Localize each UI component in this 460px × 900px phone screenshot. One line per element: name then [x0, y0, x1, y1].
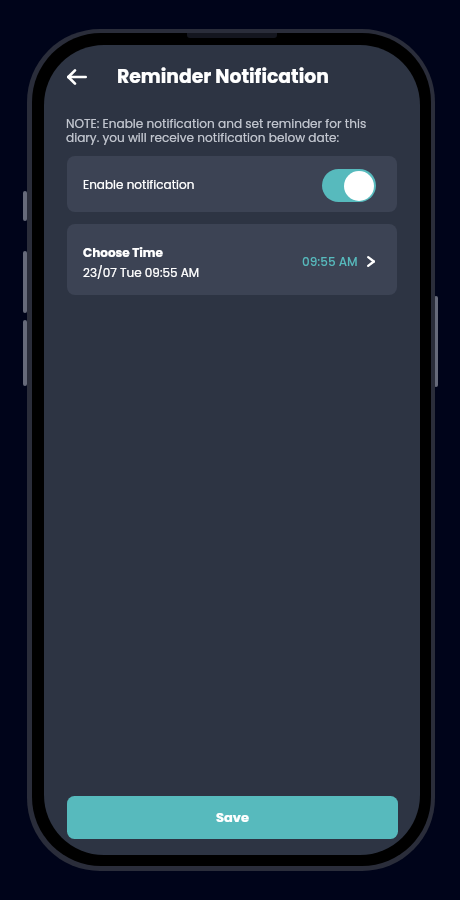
staticText: NOTE: Enable notification and set remind… [66, 115, 376, 147]
button[interactable]: Enable notification toggle [322, 169, 376, 202]
staticText: 23/07 Tue 09:55 AM [83, 264, 200, 281]
button[interactable]: Save [67, 796, 398, 839]
staticText: Choose Time [83, 244, 163, 261]
staticText: Reminder Notification [117, 63, 329, 89]
staticText: Save [216, 808, 249, 826]
staticText: 09:55 AM [302, 253, 358, 270]
button[interactable]: Enable notification [67, 156, 397, 212]
button[interactable]: Back [56, 58, 98, 96]
staticText: Enable notification [83, 176, 195, 193]
button[interactable]: Choose Time [67, 224, 397, 295]
